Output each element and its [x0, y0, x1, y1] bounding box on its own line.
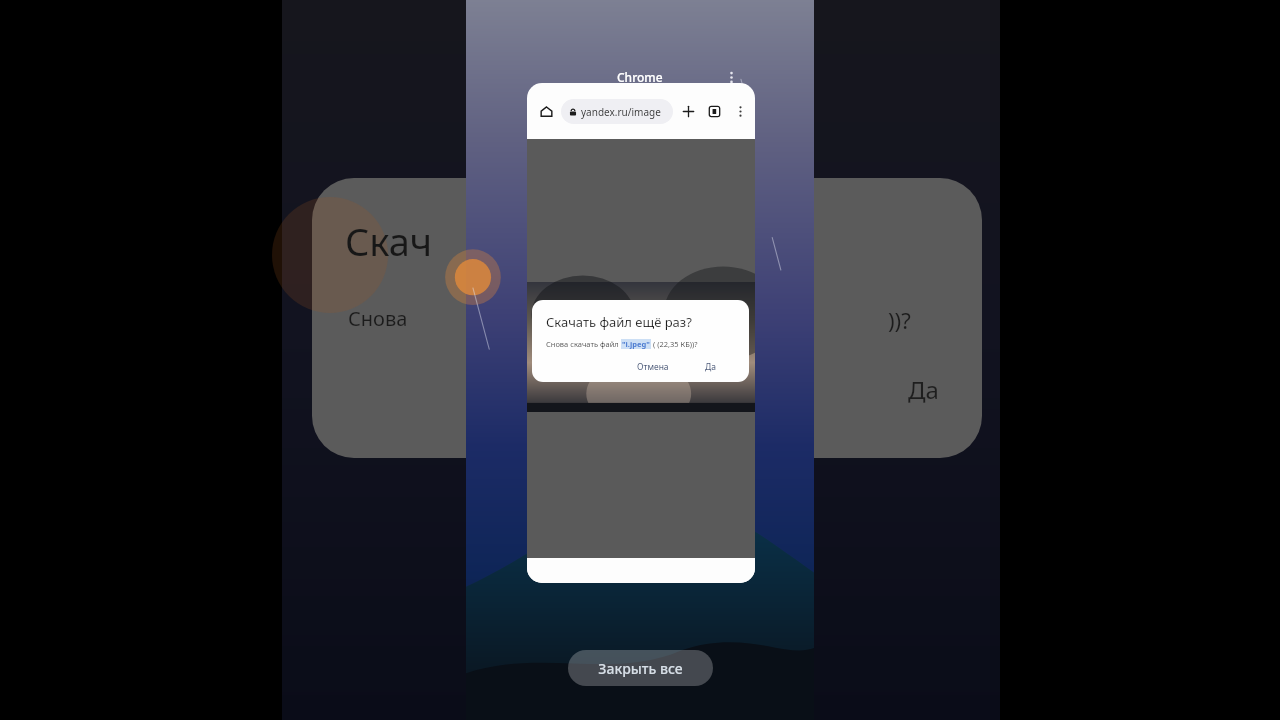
staticText: Закрыть все	[598, 659, 683, 678]
button[interactable]: More options	[727, 98, 753, 124]
staticText: "i.jpeg"	[622, 339, 650, 349]
button[interactable]: Tab options	[721, 67, 741, 87]
staticText: Снова	[348, 305, 408, 332]
staticText: Отмена	[637, 361, 669, 373]
staticText: Chrome	[617, 69, 663, 85]
button[interactable]: Да	[702, 358, 719, 376]
staticText: Да	[908, 373, 939, 406]
staticText: ( (22,35 КБ))?	[651, 339, 698, 349]
staticText: Скачать файл ещё раз?	[546, 313, 692, 331]
button[interactable]: Home	[533, 98, 559, 124]
button[interactable]: Switch tabs	[701, 98, 727, 124]
staticText: ))?	[888, 305, 911, 335]
button[interactable]: yandex.ru/image	[561, 99, 673, 124]
button[interactable]: Home	[527, 83, 755, 583]
staticText: yandex.ru/image	[581, 105, 661, 119]
button[interactable]: Отмена	[634, 358, 672, 376]
staticText: Снова скачать файл	[546, 339, 621, 349]
button[interactable]: New tab	[675, 98, 701, 124]
staticText: Скач	[345, 215, 433, 267]
staticText: Да	[705, 361, 716, 373]
button[interactable]: Закрыть все	[568, 650, 713, 686]
